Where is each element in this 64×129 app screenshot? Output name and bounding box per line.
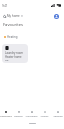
button[interactable]: My home xyxy=(3,14,23,18)
button[interactable]: Heating xyxy=(0,35,64,39)
staticText: Automations xyxy=(25,114,38,117)
staticText: My home xyxy=(7,14,20,18)
staticText: Settings xyxy=(53,114,63,117)
staticText: Favourites xyxy=(0,114,12,117)
staticText: Devices xyxy=(14,114,23,117)
staticText: Favourites xyxy=(3,22,24,28)
button[interactable]: Activity xyxy=(38,108,51,120)
button[interactable]: Laundry room Heater home xyxy=(2,44,28,63)
staticText: Heating xyxy=(7,35,18,39)
staticText: Activity xyxy=(40,114,49,117)
button[interactable]: Account xyxy=(54,14,59,19)
button[interactable]: Settings xyxy=(51,108,64,120)
button[interactable]: Automations xyxy=(25,108,38,120)
staticText: Laundry room Heater home xyxy=(5,51,23,58)
staticText: Off xyxy=(5,58,9,61)
button[interactable]: Devices xyxy=(12,108,25,120)
button[interactable]: Favourites xyxy=(0,108,12,120)
staticText: 9:41 xyxy=(2,4,8,8)
